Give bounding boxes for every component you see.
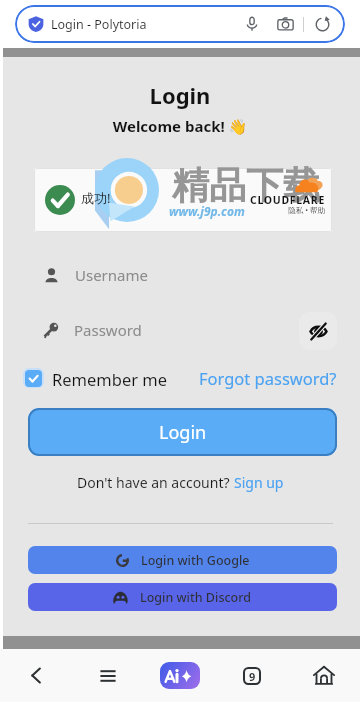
button[interactable]: Home	[288, 649, 360, 702]
button[interactable]: Login with Discord	[28, 583, 337, 611]
button[interactable]: AI assistant	[160, 662, 200, 689]
staticText: 精品下载	[172, 162, 320, 209]
staticText: www.j9p.com	[169, 203, 245, 219]
staticText: Username	[75, 265, 148, 285]
staticText: Login	[159, 420, 207, 445]
staticText: Login - Polytoria	[51, 16, 147, 33]
button[interactable]: Login with Google	[28, 546, 337, 574]
staticText: Remember me	[52, 368, 168, 388]
staticText: Password	[74, 320, 142, 340]
button[interactable]: Sign up	[234, 473, 284, 492]
button[interactable]: Forgot password?	[199, 367, 337, 389]
button[interactable]: Login - Polytoria	[15, 5, 345, 43]
staticText: Login with Google	[141, 552, 250, 569]
staticText: 成功!	[81, 189, 111, 207]
button[interactable]: Voice search	[241, 13, 263, 35]
button[interactable]: Search by image	[274, 13, 296, 35]
staticText: 9	[249, 669, 256, 684]
staticText: 隐私 • 帮助	[225, 205, 325, 215]
staticText: Don't have an account?	[77, 473, 234, 492]
button[interactable]: Remember me	[22, 366, 168, 390]
button[interactable]: Tabs	[216, 649, 288, 702]
staticText: Welcome back! 👋	[0, 116, 360, 136]
button[interactable]: Menu	[72, 649, 144, 702]
button[interactable]: Login	[28, 408, 337, 456]
staticText: CLOUDFLARE	[225, 193, 325, 207]
button[interactable]: Back	[0, 649, 72, 702]
staticText: Login with Discord	[140, 589, 252, 606]
button[interactable]: Show password	[299, 312, 337, 350]
staticText: Login	[0, 80, 360, 110]
button[interactable]: Reload page	[311, 13, 333, 35]
